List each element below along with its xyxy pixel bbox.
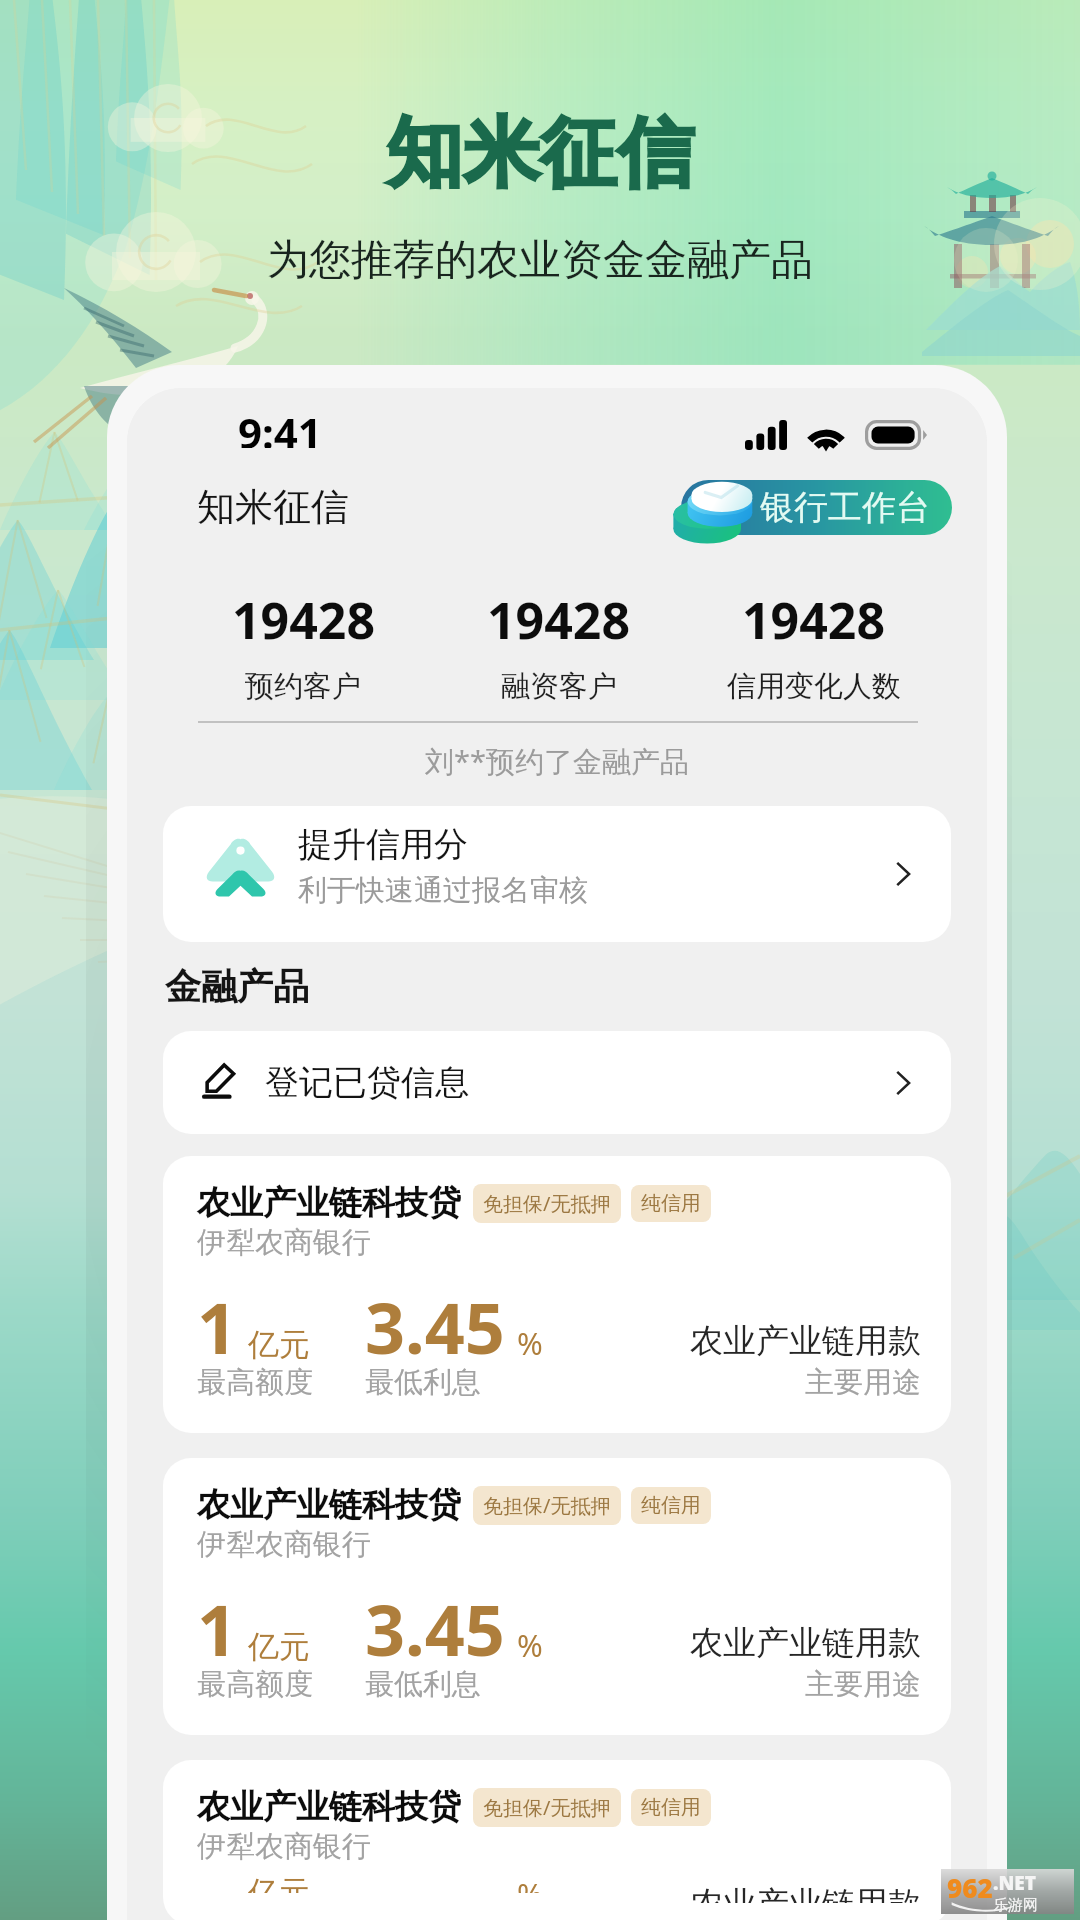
staticText: 亿元 bbox=[248, 1627, 310, 1666]
staticText: 为您推荐的农业资金金融产品 bbox=[267, 234, 813, 287]
staticText: 农业产业链用款 bbox=[690, 1320, 921, 1362]
staticText: 纯信用 bbox=[641, 1795, 701, 1820]
staticText: 农业产业链用款 bbox=[690, 1883, 921, 1903]
staticText: 主要用途 bbox=[805, 1364, 921, 1401]
staticText: 亿元 bbox=[248, 1873, 310, 1893]
staticText: 免担保/无抵押 bbox=[483, 1794, 611, 1821]
staticText: 9:41 bbox=[238, 404, 322, 448]
staticText: 纯信用 bbox=[641, 1493, 701, 1518]
staticText: % bbox=[517, 1322, 543, 1364]
staticText: 纯信用 bbox=[641, 1191, 701, 1216]
staticText: 农业产业链用款 bbox=[690, 1622, 921, 1664]
staticText: % bbox=[517, 1624, 543, 1666]
button[interactable]: 农业产业链科技贷 bbox=[163, 1458, 951, 1735]
staticText: 主要用途 bbox=[805, 1666, 921, 1703]
button[interactable]: 银行工作台 bbox=[681, 480, 952, 535]
staticText: 亿元 bbox=[248, 1325, 310, 1364]
staticText: 提升信用分 bbox=[298, 823, 468, 866]
button[interactable]: 提升信用分 bbox=[163, 806, 951, 942]
staticText: 最高额度 bbox=[197, 1364, 313, 1401]
staticText: % bbox=[517, 1873, 543, 1893]
staticText: .NET bbox=[993, 1870, 1036, 1896]
staticText: 962 bbox=[947, 1870, 993, 1905]
staticText: 登记已贷信息 bbox=[265, 1061, 469, 1104]
staticText: 最低利息 bbox=[365, 1364, 481, 1401]
staticText: 知米征信 bbox=[197, 483, 349, 531]
staticText: 19428 bbox=[487, 586, 630, 654]
staticText: 19428 bbox=[742, 586, 885, 654]
staticText: 预约客户 bbox=[245, 668, 361, 705]
staticText: 信用变化人数 bbox=[727, 668, 901, 705]
staticText: 最低利息 bbox=[365, 1666, 481, 1703]
button[interactable]: 登记已贷信息 bbox=[163, 1031, 951, 1134]
staticText: 伊犁农商银行 bbox=[197, 1828, 371, 1865]
staticText: 3.45 bbox=[365, 1581, 505, 1676]
other: 登记已贷信息详情 bbox=[885, 1065, 921, 1101]
button[interactable]: 农业产业链科技贷 bbox=[163, 1156, 951, 1433]
staticText: 最高额度 bbox=[197, 1666, 313, 1703]
staticText: 农业产业链科技贷 bbox=[197, 1786, 461, 1828]
staticText: 农业产业链科技贷 bbox=[197, 1484, 461, 1526]
button[interactable]: 农业产业链科技贷 bbox=[163, 1760, 951, 1920]
staticText: 伊犁农商银行 bbox=[197, 1526, 371, 1563]
staticText: 1 bbox=[197, 1581, 238, 1676]
staticText: 免担保/无抵押 bbox=[483, 1190, 611, 1217]
staticText: 1 bbox=[197, 1279, 238, 1374]
staticText: 刘**预约了金融产品 bbox=[127, 741, 987, 781]
staticText: 伊犁农商银行 bbox=[197, 1224, 371, 1261]
other: 提升信用分详情 bbox=[885, 856, 921, 892]
staticText: 利于快速通过报名审核 bbox=[298, 872, 588, 909]
staticText: 融资客户 bbox=[501, 668, 617, 705]
staticText: 乐游网 bbox=[993, 1896, 1038, 1914]
staticText: 知米征信 bbox=[386, 106, 694, 202]
staticText: 19428 bbox=[232, 586, 375, 654]
staticText: 金融产品 bbox=[165, 964, 309, 1009]
staticText: 3.45 bbox=[365, 1279, 505, 1374]
staticText: 农业产业链科技贷 bbox=[197, 1182, 461, 1224]
staticText: 银行工作台 bbox=[760, 486, 930, 529]
staticText: 免担保/无抵押 bbox=[483, 1492, 611, 1519]
